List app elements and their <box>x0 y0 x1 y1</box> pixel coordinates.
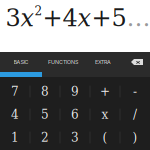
staticText: 4 <box>11 107 19 121</box>
button[interactable]: Delete <box>124 52 150 72</box>
staticText: EXTRA <box>95 59 111 65</box>
button[interactable]: BASIC <box>0 52 42 72</box>
button[interactable]: x <box>90 103 119 126</box>
button[interactable]: 6 <box>60 103 89 126</box>
staticText: +5 <box>91 4 126 32</box>
button[interactable]: 1 <box>0 126 29 149</box>
staticText: ) <box>132 130 137 144</box>
staticText: 7 <box>11 84 19 98</box>
staticText: 9 <box>71 84 79 98</box>
staticText: x <box>20 4 34 32</box>
staticText: 5 <box>41 107 49 121</box>
staticText: … <box>126 4 150 32</box>
staticText: 6 <box>71 107 79 121</box>
button[interactable]: 5 <box>30 103 59 126</box>
button[interactable]: 8 <box>30 80 59 103</box>
staticText: 3 <box>71 130 79 144</box>
button[interactable]: ) <box>120 126 149 149</box>
button[interactable]: 7 <box>0 80 29 103</box>
staticText: + <box>100 84 110 98</box>
button[interactable]: - <box>120 80 149 103</box>
button[interactable]: + <box>90 80 119 103</box>
staticText: x <box>101 107 108 121</box>
staticText: x <box>77 4 91 32</box>
staticText: 3 <box>5 4 20 32</box>
button[interactable]: 9 <box>60 80 89 103</box>
button[interactable]: 4 <box>0 103 29 126</box>
button[interactable]: EXTRA <box>84 52 122 72</box>
staticText: 2 <box>34 4 42 18</box>
button[interactable]: 3 <box>60 126 89 149</box>
staticText: / <box>133 107 137 121</box>
button[interactable]: 2 <box>30 126 59 149</box>
staticText: 1 <box>11 130 19 144</box>
staticText: - <box>133 84 137 98</box>
button[interactable]: ( <box>90 126 119 149</box>
staticText: FUNCTIONS <box>48 59 78 65</box>
button[interactable]: FUNCTIONS <box>42 52 84 72</box>
button[interactable]: / <box>120 103 149 126</box>
staticText: 8 <box>41 84 49 98</box>
staticText: +4 <box>42 4 77 32</box>
staticText: 2 <box>41 130 49 144</box>
staticText: ( <box>102 130 107 144</box>
staticText: BASIC <box>13 59 28 65</box>
